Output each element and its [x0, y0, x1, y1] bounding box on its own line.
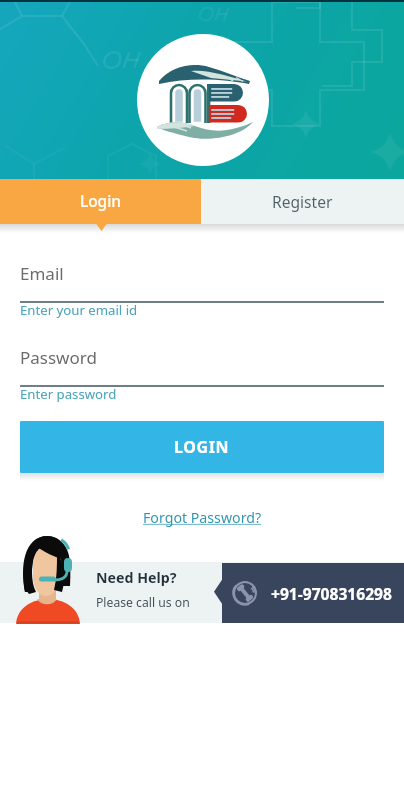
button[interactable]: Call: [214, 563, 404, 623]
staticText: Please call us on: [96, 594, 190, 611]
button[interactable]: Login: [0, 179, 201, 224]
staticText: Login: [80, 191, 121, 212]
button[interactable]: Email: [0, 262, 404, 321]
staticText: Enter your email id: [20, 301, 138, 319]
button[interactable]: LOGIN: [20, 421, 384, 473]
staticText: +91-9708316298: [271, 583, 392, 604]
button[interactable]: Forgot Password?: [137, 505, 268, 530]
staticText: Email: [20, 262, 64, 285]
other: Call: [232, 580, 258, 606]
staticText: LOGIN: [174, 436, 230, 458]
staticText: Password: [20, 346, 97, 369]
button[interactable]: Password: [0, 346, 404, 405]
button[interactable]: Register: [201, 179, 404, 224]
staticText: Need Help?: [96, 568, 177, 587]
staticText: Enter password: [20, 385, 117, 403]
staticText: Register: [272, 191, 333, 212]
